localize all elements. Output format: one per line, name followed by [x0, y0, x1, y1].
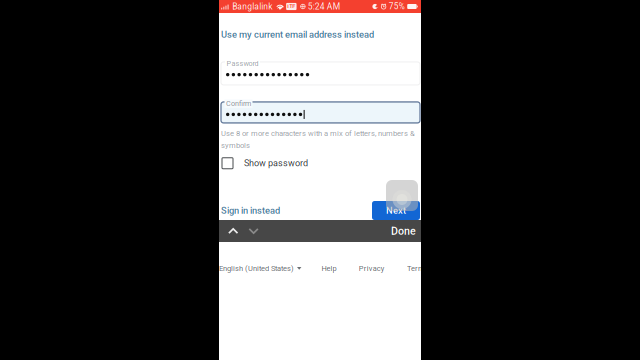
- staticText: Done: [391, 225, 416, 237]
- staticText: Sign in instead: [221, 205, 280, 216]
- button[interactable]: Terms: [405, 261, 431, 276]
- staticText: Confirm: [226, 99, 251, 108]
- staticText: Show password: [244, 158, 308, 168]
- staticText: 5:24 AM: [308, 1, 340, 11]
- button[interactable]: Sign in instead: [221, 203, 280, 218]
- staticText: symbols: [221, 141, 250, 150]
- button[interactable]: Next field: [243, 221, 264, 241]
- staticText: 75%: [389, 2, 405, 11]
- button[interactable]: English (United States): [219, 261, 301, 276]
- button[interactable]: Show password: [221, 156, 308, 171]
- button[interactable]: Confirm: [221, 102, 420, 123]
- staticText: Privacy: [359, 264, 385, 273]
- button[interactable]: Previous field: [223, 221, 243, 241]
- staticText: Help: [322, 264, 337, 273]
- button[interactable]: Password: [221, 62, 420, 85]
- staticText: Use my current email address instead: [221, 29, 374, 40]
- staticText: Terms: [407, 264, 429, 273]
- staticText: English (United States): [219, 264, 294, 273]
- button[interactable]: Next: [372, 201, 420, 220]
- staticText: Banglalink: [232, 1, 272, 11]
- staticText: Password: [226, 59, 258, 68]
- button[interactable]: Help: [320, 261, 339, 276]
- button[interactable]: Done: [388, 219, 419, 243]
- button[interactable]: Privacy: [357, 261, 387, 276]
- staticText: Use 8 or more characters with a mix of l…: [221, 129, 415, 138]
- button[interactable]: Use my current email address instead: [221, 28, 374, 41]
- staticText: Next: [386, 205, 406, 216]
- staticText: LTE: [287, 3, 295, 10]
